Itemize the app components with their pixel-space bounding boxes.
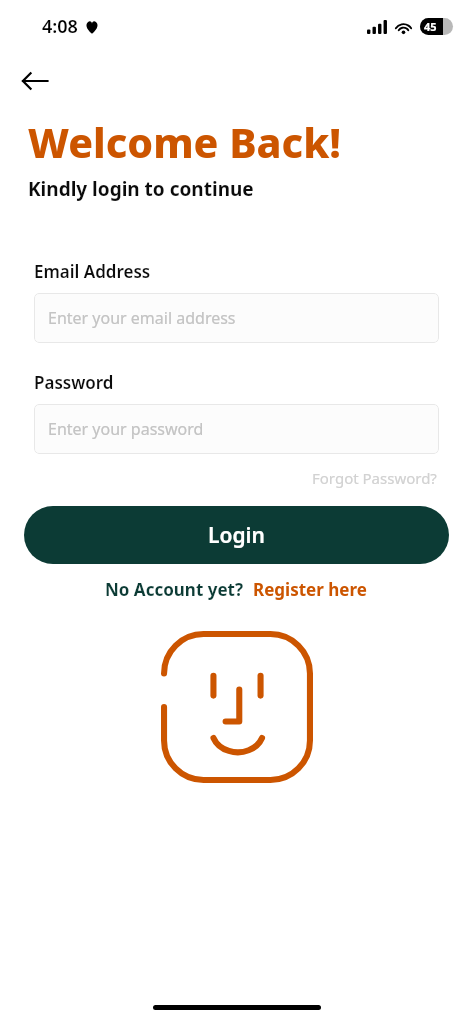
staticText: No Account yet? — [105, 578, 244, 601]
button[interactable]: Back — [14, 60, 56, 102]
staticText: Register here — [253, 578, 367, 601]
staticText: Forgot Password? — [312, 468, 437, 488]
staticText: 4:08 — [42, 14, 78, 39]
button[interactable]: Face ID login — [161, 631, 313, 783]
staticText: Welcome Back! — [28, 114, 342, 170]
staticText: Enter your email address — [48, 307, 236, 329]
button[interactable]: Forgot Password? — [310, 466, 439, 490]
button[interactable]: Enter your password — [34, 404, 439, 454]
button[interactable]: Enter your email address — [34, 293, 439, 343]
staticText: Password — [34, 371, 114, 394]
staticText: 45 — [424, 19, 437, 34]
staticText: Kindly login to continue — [28, 176, 254, 202]
staticText: Login — [208, 521, 265, 550]
staticText: Enter your password — [48, 418, 204, 440]
button[interactable]: Login — [24, 506, 449, 564]
button[interactable]: Register here — [251, 576, 369, 603]
staticText: Email Address — [34, 260, 151, 283]
